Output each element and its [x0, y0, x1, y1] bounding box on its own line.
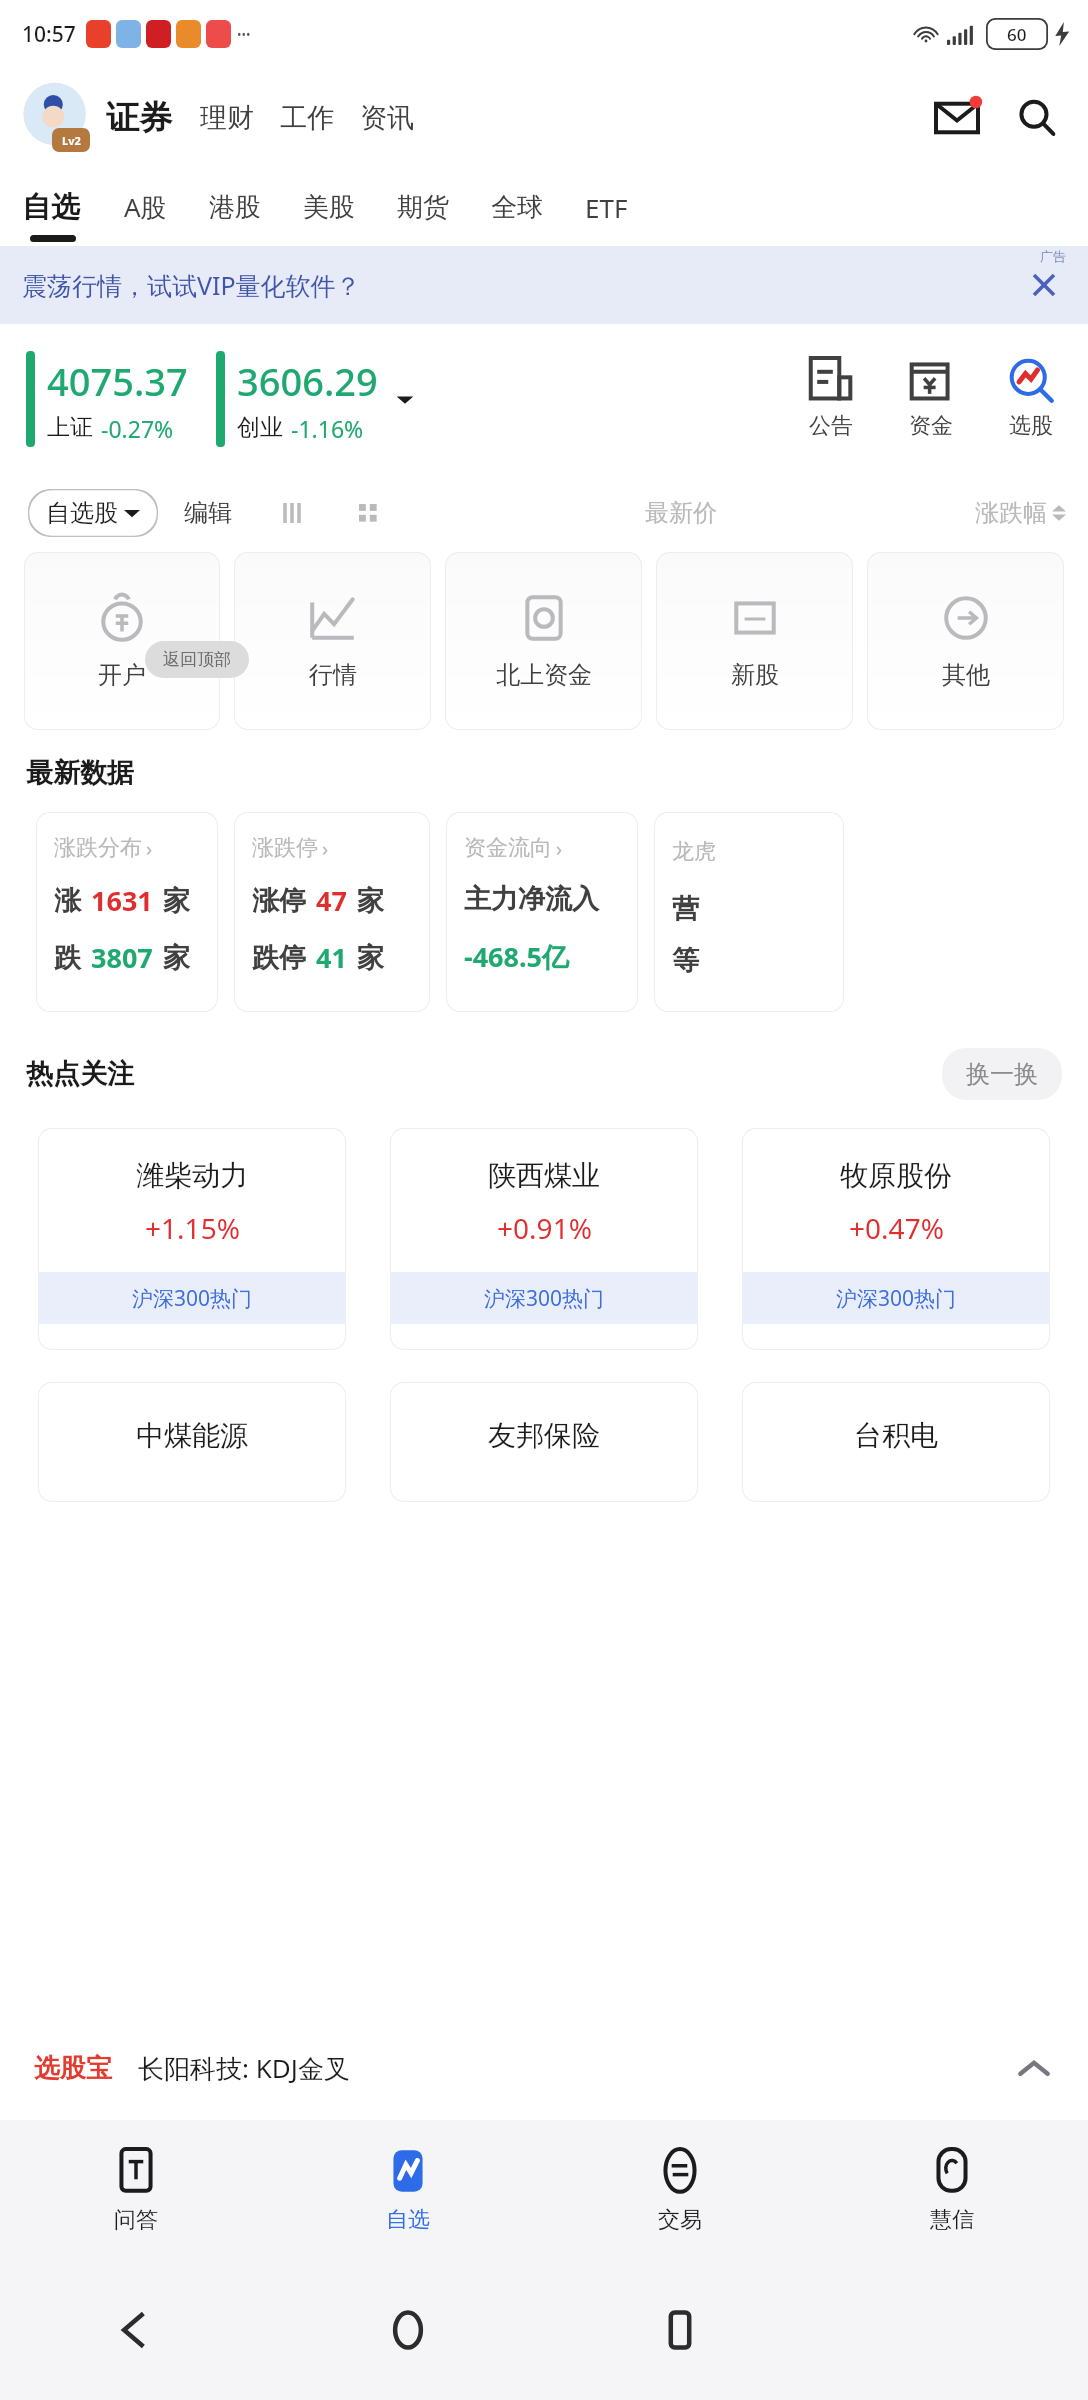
staticText: 北上资金: [496, 660, 592, 690]
button[interactable]: 换一换: [942, 1048, 1062, 1100]
staticText: •••: [237, 26, 251, 42]
button[interactable]: 返回顶部: [145, 641, 249, 678]
other: Back: [113, 2307, 159, 2353]
staticText: 资金流向: [464, 834, 552, 862]
staticText: 沪深300热门: [836, 1284, 957, 1313]
button[interactable]: Profile: [22, 84, 90, 152]
button[interactable]: 资讯: [360, 101, 414, 135]
button[interactable]: List view: [272, 493, 312, 533]
staticText: 主力净流入: [464, 882, 599, 916]
button[interactable]: Search: [1012, 93, 1062, 143]
staticText: ETF: [585, 190, 628, 225]
button[interactable]: Grid view: [348, 493, 388, 533]
button[interactable]: Close ad: [1022, 263, 1066, 307]
button[interactable]: 龙虎: [654, 812, 844, 1012]
button[interactable]: 交易: [544, 2120, 816, 2260]
staticText: 3606.29: [237, 355, 378, 407]
staticText: 涨跌停: [252, 834, 318, 862]
button[interactable]: 编辑: [184, 498, 232, 528]
button[interactable]: 选股宝: [0, 2016, 1088, 2120]
staticText: 牧原股份: [840, 1158, 952, 1193]
staticText: 3807: [91, 939, 153, 976]
button[interactable]: 资金: [894, 358, 968, 440]
staticText: +0.91%: [497, 1209, 592, 1247]
button[interactable]: 开户: [24, 552, 220, 730]
staticText: 家: [163, 941, 190, 975]
staticText: 涨跌分布: [54, 834, 142, 862]
staticText: 换一换: [966, 1059, 1038, 1089]
button[interactable]: 全球: [491, 191, 585, 224]
button[interactable]: 友邦保险: [390, 1382, 698, 1502]
staticText: -1.16%: [291, 413, 364, 444]
button[interactable]: 理财: [200, 101, 254, 135]
button[interactable]: 震荡行情，试试VIP量化软件？: [0, 246, 1088, 324]
staticText: 沪深300热门: [484, 1284, 605, 1313]
button[interactable]: 4075.37: [26, 351, 188, 447]
button[interactable]: 台积电: [742, 1382, 1050, 1502]
button[interactable]: 涨跌分布: [36, 812, 218, 1012]
staticText: 龙虎: [672, 838, 716, 866]
button[interactable]: 资金流向: [446, 812, 638, 1012]
staticText: 家: [357, 941, 384, 975]
staticText: 涨: [54, 884, 81, 918]
button[interactable]: 涨跌幅: [975, 498, 1066, 528]
button[interactable]: 慧信: [816, 2120, 1088, 2260]
button[interactable]: 最新价: [645, 498, 717, 528]
button[interactable]: 其他: [867, 552, 1064, 730]
button[interactable]: 自选: [22, 189, 124, 226]
staticText: ›: [322, 835, 329, 862]
staticText: +1.15%: [145, 1209, 240, 1247]
staticText: 47: [316, 882, 347, 919]
button[interactable]: 港股: [209, 191, 303, 224]
staticText: 自选股: [46, 498, 118, 528]
button[interactable]: 潍柴动力: [38, 1128, 346, 1350]
button[interactable]: 3606.29: [216, 351, 378, 447]
staticText: 自选: [22, 189, 80, 226]
button[interactable]: A股: [124, 189, 209, 225]
staticText: 1631: [91, 882, 153, 919]
other: Home: [385, 2307, 431, 2353]
button[interactable]: Messages: [930, 91, 984, 145]
staticText: 创业: [237, 413, 283, 442]
button[interactable]: 行情: [234, 552, 431, 730]
button[interactable]: 自选: [272, 2120, 544, 2260]
staticText: 60: [1007, 23, 1027, 46]
button[interactable]: Expand indices: [392, 389, 418, 409]
staticText: 问答: [114, 2206, 158, 2234]
staticText: 期货: [397, 191, 449, 224]
button[interactable]: 中煤能源: [38, 1382, 346, 1502]
staticText: Lv2: [62, 133, 81, 148]
button[interactable]: 选股: [994, 358, 1068, 440]
button[interactable]: 工作: [280, 101, 334, 135]
staticText: 营: [672, 892, 699, 926]
staticText: 友邦保险: [488, 1418, 600, 1453]
staticText: ›: [556, 835, 563, 862]
staticText: ›: [146, 835, 153, 862]
staticText: 中煤能源: [136, 1418, 248, 1453]
staticText: A股: [124, 189, 167, 225]
staticText: 家: [163, 884, 190, 918]
button[interactable]: 北上资金: [445, 552, 642, 730]
staticText: 台积电: [854, 1418, 938, 1453]
button[interactable]: 证券: [106, 97, 172, 139]
staticText: 热点关注: [26, 1057, 134, 1091]
button[interactable]: 牧原股份: [742, 1128, 1050, 1350]
staticText: 港股: [209, 191, 261, 224]
button[interactable]: 陕西煤业: [390, 1128, 698, 1350]
staticText: 返回顶部: [163, 649, 231, 670]
button[interactable]: 新股: [656, 552, 853, 730]
button[interactable]: ETF: [585, 190, 670, 225]
staticText: 资金: [909, 412, 953, 440]
button[interactable]: 美股: [303, 191, 397, 224]
button[interactable]: 期货: [397, 191, 491, 224]
button[interactable]: 公告: [794, 358, 868, 440]
staticText: 广告: [1040, 248, 1066, 264]
staticText: 长阳科技: KDJ金叉: [138, 2050, 350, 2086]
button[interactable]: 涨跌停: [234, 812, 430, 1012]
staticText: 跌: [54, 941, 81, 975]
button[interactable]: 自选股: [26, 489, 160, 537]
staticText: 上证: [47, 413, 93, 442]
button[interactable]: 问答: [0, 2120, 272, 2260]
staticText: 沪深300热门: [132, 1284, 253, 1313]
staticText: 跌停: [252, 941, 306, 975]
